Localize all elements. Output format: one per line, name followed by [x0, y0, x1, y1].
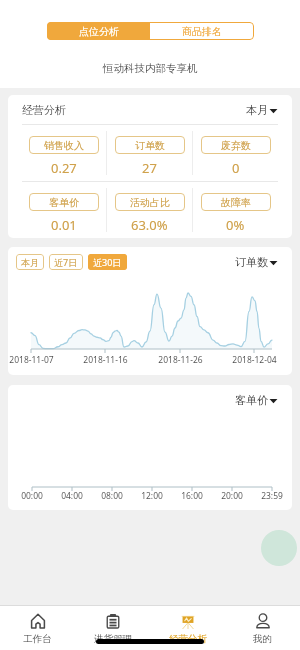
staticText: 0% — [226, 216, 245, 234]
staticText: 客单价 — [49, 196, 79, 209]
staticText: 经营分析 — [169, 633, 207, 645]
staticText: 点位分析 — [79, 25, 119, 38]
button[interactable]: 工作台 — [0, 606, 75, 650]
button[interactable]: 商品排名 — [150, 22, 254, 40]
staticText: 进货管理 — [94, 633, 132, 645]
button[interactable]: 订单数 — [235, 255, 278, 269]
staticText: 2018-11-16 — [83, 354, 128, 366]
staticText: 工作台 — [23, 633, 52, 645]
staticText: 0.27 — [51, 159, 77, 177]
staticText: 本月 — [21, 257, 39, 268]
staticText: 00:00 — [21, 490, 43, 502]
staticText: 0 — [232, 159, 240, 177]
staticText: 16:00 — [181, 490, 203, 502]
staticText: 故障率 — [221, 196, 251, 209]
staticText: 2018-11-07 — [9, 354, 54, 366]
staticText: 活动占比 — [130, 196, 170, 209]
button[interactable]: 我的 — [225, 606, 300, 650]
staticText: 2018-11-26 — [158, 354, 203, 366]
staticText: 恒动科技内部专享机 — [103, 62, 198, 75]
staticText: 订单数 — [135, 139, 165, 152]
staticText: 近30日 — [93, 256, 122, 268]
button[interactable]: Assistant — [261, 530, 297, 566]
staticText: 12:00 — [141, 490, 163, 502]
staticText: 经营分析 — [22, 103, 66, 117]
staticText: 本月 — [246, 103, 268, 117]
staticText: 近7日 — [54, 256, 78, 268]
staticText: 0.01 — [51, 216, 77, 234]
staticText: 20:00 — [221, 490, 243, 502]
staticText: 2018-12-04 — [232, 354, 277, 366]
button[interactable]: 本月 — [16, 254, 44, 270]
button[interactable]: 客单价 — [235, 393, 278, 407]
staticText: 63.0% — [131, 216, 168, 234]
button[interactable]: 近30日 — [88, 254, 127, 270]
staticText: 23:59 — [261, 490, 283, 502]
staticText: 商品排名 — [182, 25, 222, 38]
staticText: 27 — [142, 159, 157, 177]
staticText: 我的 — [253, 633, 272, 645]
staticText: 08:00 — [101, 490, 123, 502]
button[interactable]: 点位分析 — [47, 22, 150, 40]
staticText: 订单数 — [235, 255, 268, 269]
button[interactable]: 进货管理 — [75, 606, 150, 650]
staticText: 04:00 — [61, 490, 83, 502]
staticText: 客单价 — [235, 393, 268, 407]
staticText: 废弃数 — [221, 139, 251, 152]
button[interactable]: 经营分析 — [150, 606, 225, 650]
button[interactable]: 本月 — [246, 103, 278, 117]
staticText: 销售收入 — [44, 139, 84, 152]
button[interactable]: 近7日 — [49, 254, 83, 270]
